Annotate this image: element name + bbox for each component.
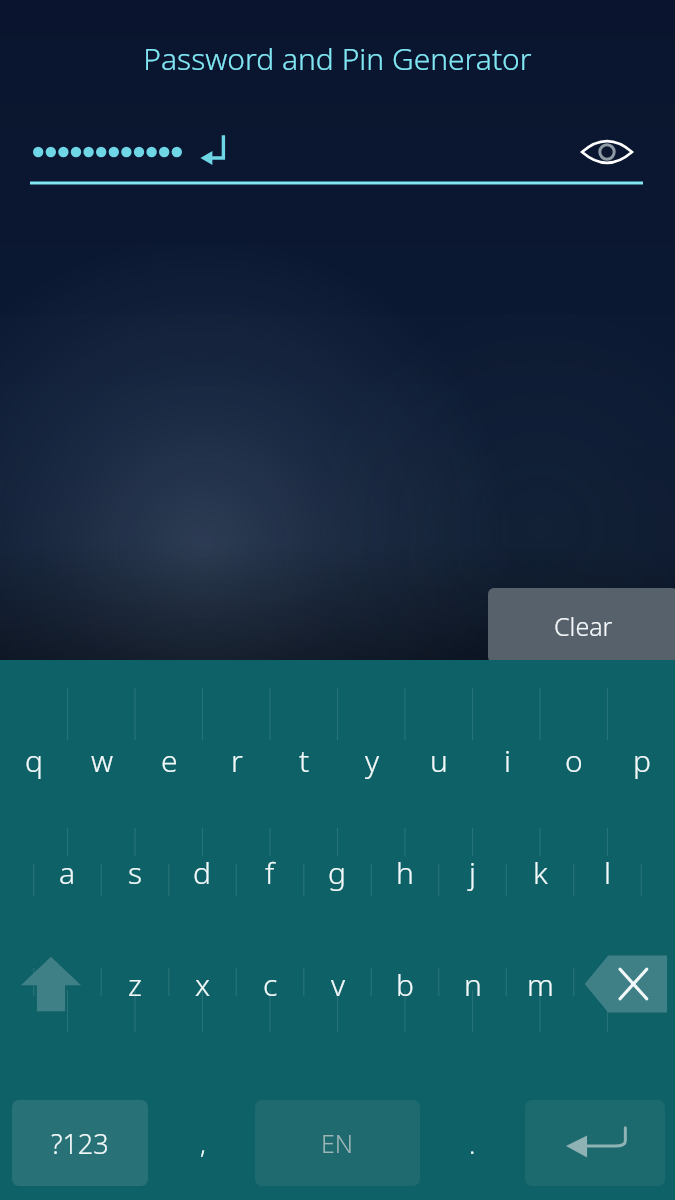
button[interactable]: n <box>439 932 507 1036</box>
button[interactable]: o <box>540 708 608 812</box>
button[interactable]: Show password <box>575 124 639 180</box>
button[interactable] <box>30 120 643 188</box>
staticText: j <box>469 852 476 893</box>
button[interactable]: i <box>473 708 541 812</box>
staticText: z <box>128 964 142 1005</box>
button[interactable]: b <box>371 932 439 1036</box>
staticText: . <box>469 1126 476 1161</box>
button[interactable]: f <box>236 820 304 924</box>
button[interactable]: a <box>33 820 101 924</box>
button[interactable]: Backspace <box>574 932 675 1036</box>
staticText: h <box>396 852 414 893</box>
staticText: k <box>533 852 548 893</box>
button[interactable]: m <box>506 932 574 1036</box>
staticText: Clear <box>554 609 613 643</box>
button[interactable]: e <box>135 708 203 812</box>
staticText: ?123 <box>51 1125 109 1162</box>
button[interactable]: Shift <box>0 932 101 1036</box>
staticText: q <box>25 740 43 781</box>
button[interactable]: z <box>101 932 169 1036</box>
button[interactable]: l <box>573 820 641 924</box>
staticText: v <box>331 964 346 1005</box>
button[interactable]: Clear <box>488 588 675 663</box>
button[interactable]: q <box>0 708 68 812</box>
button[interactable]: k <box>506 820 574 924</box>
button[interactable]: r <box>203 708 271 812</box>
staticText: l <box>604 852 611 893</box>
button[interactable]: j <box>438 820 506 924</box>
button[interactable]: . <box>437 1100 507 1186</box>
staticText: a <box>59 852 76 893</box>
button[interactable]: y <box>338 708 406 812</box>
button[interactable]: Enter <box>525 1100 665 1186</box>
staticText: u <box>430 740 448 781</box>
staticText: o <box>565 740 583 781</box>
staticText: d <box>193 852 211 893</box>
button[interactable]: u <box>405 708 473 812</box>
staticText: e <box>161 740 178 781</box>
button[interactable]: p <box>608 708 675 812</box>
button[interactable]: t <box>270 708 338 812</box>
button[interactable]: v <box>304 932 372 1036</box>
staticText: t <box>299 740 310 781</box>
button[interactable]: x <box>169 932 237 1036</box>
staticText: g <box>328 852 346 893</box>
staticText: b <box>396 964 414 1005</box>
button[interactable]: g <box>303 820 371 924</box>
staticText: n <box>464 964 482 1005</box>
staticText: Password and Pin Generator <box>143 38 532 79</box>
button[interactable]: ?123 <box>12 1100 148 1186</box>
staticText: c <box>263 964 278 1005</box>
staticText: y <box>365 740 380 781</box>
button[interactable]: c <box>236 932 304 1036</box>
button[interactable]: , <box>168 1100 238 1186</box>
staticText: r <box>231 740 243 781</box>
staticText: m <box>527 964 554 1005</box>
staticText: f <box>265 852 275 893</box>
button[interactable]: h <box>371 820 439 924</box>
staticText: x <box>195 964 211 1005</box>
button[interactable]: EN <box>255 1100 420 1186</box>
staticText: s <box>128 852 143 893</box>
staticText: p <box>633 740 651 781</box>
button[interactable]: d <box>168 820 236 924</box>
button[interactable]: w <box>68 708 136 812</box>
staticText: i <box>504 740 511 781</box>
staticText: , <box>200 1126 206 1161</box>
button[interactable]: s <box>101 820 169 924</box>
staticText: w <box>91 740 114 781</box>
staticText: EN <box>321 1126 354 1160</box>
